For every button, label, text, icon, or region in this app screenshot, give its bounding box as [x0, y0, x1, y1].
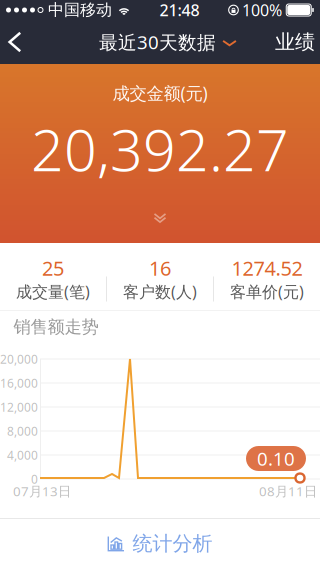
- staticText: 成交金额(元): [112, 81, 207, 104]
- staticText: 成交量(笔): [16, 281, 90, 302]
- staticText: 客单价(元): [230, 281, 304, 302]
- staticText: 4,000: [7, 447, 38, 463]
- staticText: 8,000: [7, 423, 38, 439]
- button[interactable]: 业绩: [268, 20, 320, 64]
- staticText: 21:48: [159, 0, 199, 21]
- staticText: 16,000: [0, 375, 38, 391]
- button[interactable]: Back: [0, 20, 37, 64]
- staticText: 销售额走势: [13, 316, 98, 338]
- button[interactable]: 最近30天数据: [88, 20, 248, 64]
- button[interactable]: 16: [107, 243, 213, 310]
- staticText: 07月13日: [13, 482, 71, 500]
- staticText: 12,000: [0, 399, 38, 415]
- staticText: 20,000: [0, 351, 38, 367]
- staticText: 中国移动: [48, 0, 112, 20]
- staticText: 100%: [242, 0, 282, 21]
- staticText: 25: [42, 255, 64, 281]
- staticText: 20,392.27: [31, 111, 289, 187]
- staticText: 最近30天数据: [99, 30, 216, 54]
- button[interactable]: 统计分析: [0, 519, 320, 568]
- staticText: 业绩: [275, 30, 315, 54]
- button[interactable]: Expand: [128, 203, 192, 233]
- button[interactable]: 1274.52: [214, 243, 320, 310]
- staticText: 08月11日: [259, 482, 317, 500]
- button[interactable]: 25: [0, 243, 106, 310]
- staticText: 16: [149, 255, 171, 281]
- staticText: 统计分析: [132, 531, 212, 556]
- staticText: 1274.52: [231, 255, 302, 281]
- staticText: 0: [31, 471, 38, 487]
- staticText: 客户数(人): [123, 281, 197, 302]
- staticText: 0.10: [257, 446, 295, 471]
